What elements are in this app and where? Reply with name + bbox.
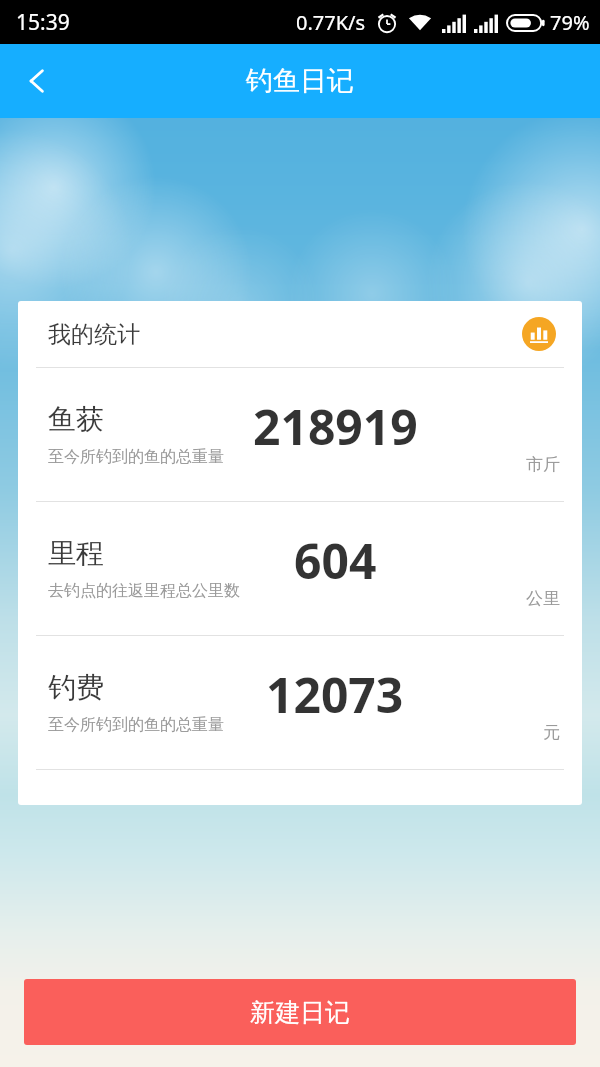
staticText: 鱼获: [48, 402, 104, 437]
staticText: 0.77K/s: [296, 9, 366, 36]
staticText: 钓鱼日记: [246, 64, 354, 98]
button[interactable]: 鱼获: [18, 368, 582, 501]
staticText: 新建日记: [250, 997, 350, 1028]
button[interactable]: Back: [0, 44, 74, 118]
staticText: 去钓点的往返里程总公里数: [48, 581, 240, 601]
staticText: 至今所钓到的鱼的总重量: [48, 715, 224, 735]
staticText: 市斤: [526, 454, 560, 475]
staticText: 12073: [266, 662, 404, 727]
button[interactable]: 里程: [18, 502, 582, 635]
staticText: 至今所钓到的鱼的总重量: [48, 447, 224, 467]
staticText: 218919: [253, 394, 418, 459]
staticText: 公里: [526, 588, 560, 609]
button[interactable]: Statistics chart: [522, 317, 556, 351]
staticText: 元: [543, 722, 560, 743]
staticText: 15:39: [16, 8, 70, 37]
button[interactable]: 钓费: [18, 636, 582, 769]
staticText: 里程: [48, 536, 104, 571]
staticText: 我的统计: [48, 320, 140, 349]
button[interactable]: 新建日记: [24, 979, 576, 1045]
staticText: 604: [294, 528, 377, 593]
staticText: 钓费: [48, 670, 104, 705]
staticText: 79%: [550, 9, 590, 36]
